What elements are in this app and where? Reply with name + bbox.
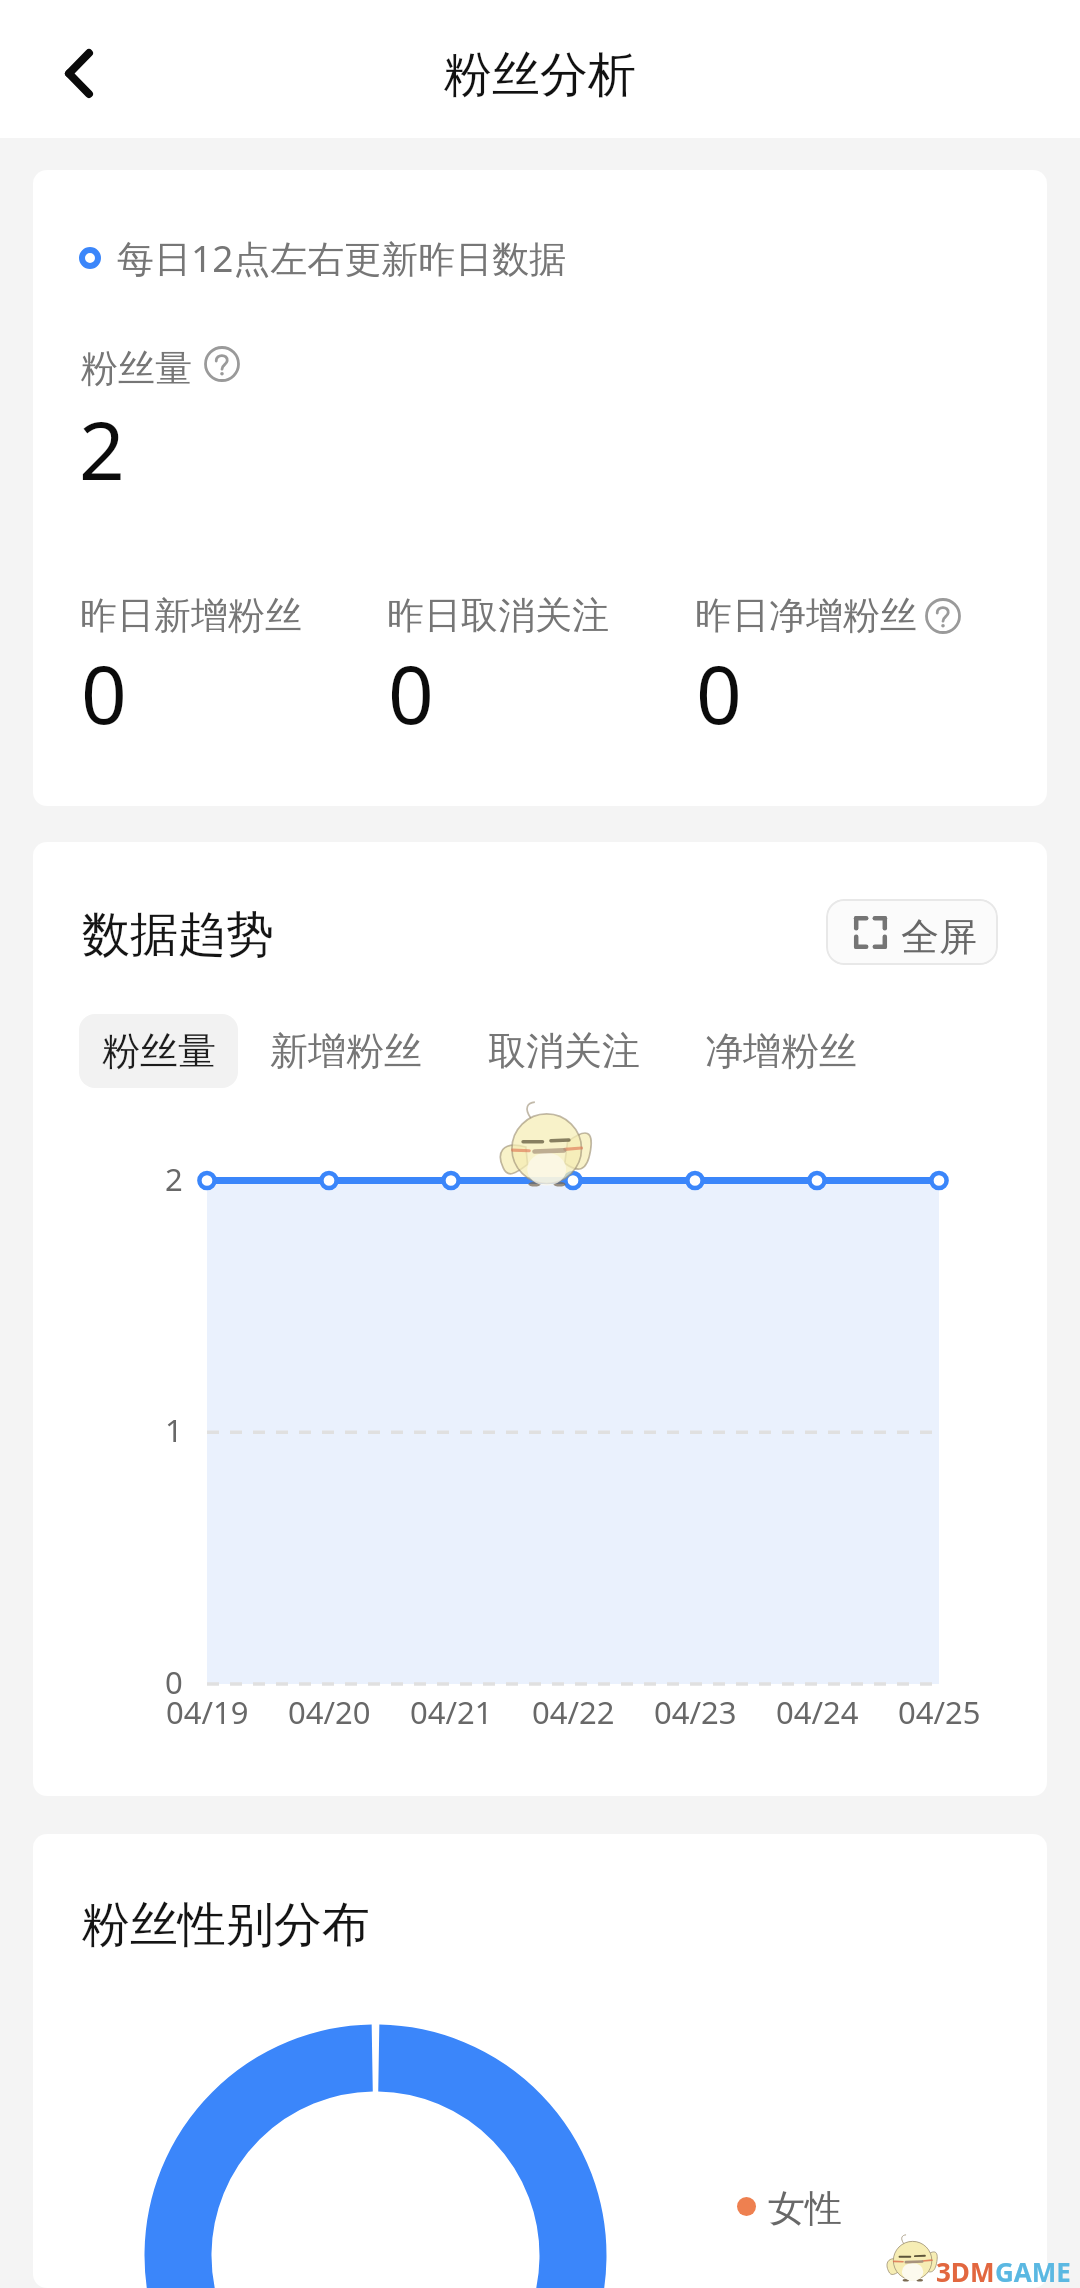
staticText: 04/25 bbox=[898, 1691, 981, 1733]
button[interactable]: Back bbox=[40, 26, 126, 112]
staticText: 2 bbox=[165, 1158, 183, 1200]
staticText: 粉丝分析 bbox=[444, 45, 636, 105]
staticText: 数据趋势 bbox=[82, 905, 274, 965]
staticText: 1 bbox=[165, 1409, 183, 1451]
staticText: 04/22 bbox=[532, 1691, 615, 1733]
button[interactable]: 粉丝量 bbox=[79, 1014, 238, 1088]
button[interactable]: 新增粉丝 bbox=[246, 1014, 446, 1088]
staticText: 0 bbox=[388, 638, 434, 747]
staticText: 昨日新增粉丝 bbox=[80, 592, 302, 639]
staticText: 04/19 bbox=[166, 1691, 249, 1733]
staticText: 0 bbox=[165, 1661, 183, 1703]
staticText: 昨日净增粉丝 bbox=[695, 592, 917, 639]
staticText: 粉丝量 bbox=[81, 345, 192, 392]
staticText: 净增粉丝 bbox=[705, 1027, 857, 1075]
staticText: 女性 bbox=[768, 2185, 842, 2232]
staticText: 粉丝性别分布 bbox=[82, 1895, 370, 1955]
staticText: 0 bbox=[696, 638, 742, 747]
staticText: 0 bbox=[81, 638, 127, 747]
button[interactable]: More info bbox=[925, 598, 961, 634]
staticText: 04/20 bbox=[288, 1691, 371, 1733]
staticText: 新增粉丝 bbox=[270, 1027, 422, 1075]
button[interactable]: 全屏 bbox=[826, 899, 998, 965]
staticText: 04/21 bbox=[410, 1691, 493, 1733]
staticText: 昨日取消关注 bbox=[387, 592, 609, 639]
staticText: 每日12点左右更新昨日数据 bbox=[117, 232, 567, 283]
staticText: 2 bbox=[79, 394, 125, 503]
staticText: 全屏 bbox=[901, 913, 977, 961]
button[interactable]: 净增粉丝 bbox=[681, 1014, 881, 1088]
button[interactable]: More info bbox=[204, 346, 240, 382]
staticText: 3DM bbox=[936, 2254, 995, 2288]
staticText: 04/24 bbox=[776, 1691, 859, 1733]
button[interactable]: 取消关注 bbox=[464, 1014, 664, 1088]
staticText: 04/23 bbox=[654, 1691, 737, 1733]
staticText: 粉丝量 bbox=[102, 1027, 216, 1075]
staticText: 取消关注 bbox=[488, 1027, 640, 1075]
staticText: GAME bbox=[995, 2254, 1071, 2288]
